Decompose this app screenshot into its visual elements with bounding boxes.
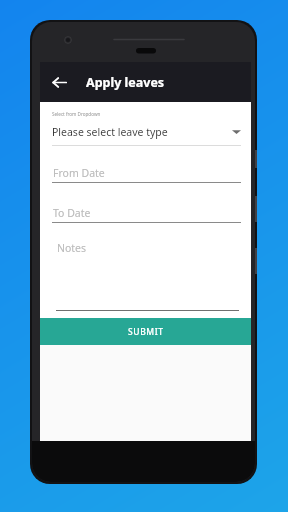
- staticText: Notes: [57, 241, 87, 255]
- button[interactable]: SUBMIT: [40, 318, 251, 345]
- staticText: From Date: [53, 166, 105, 180]
- staticText: To Date: [53, 206, 91, 220]
- staticText: Select from Dropdown: [52, 111, 101, 117]
- staticText: Apply leaves: [86, 74, 165, 91]
- other: Open dropdown: [232, 129, 241, 135]
- staticText: Please select leave type: [52, 125, 168, 139]
- button[interactable]: Notes: [40, 240, 251, 310]
- staticText: SUBMIT: [128, 326, 164, 338]
- button[interactable]: To Date: [40, 205, 251, 220]
- button[interactable]: Please select leave type: [40, 122, 251, 142]
- button[interactable]: From Date: [40, 165, 251, 180]
- button[interactable]: Back: [40, 63, 78, 101]
